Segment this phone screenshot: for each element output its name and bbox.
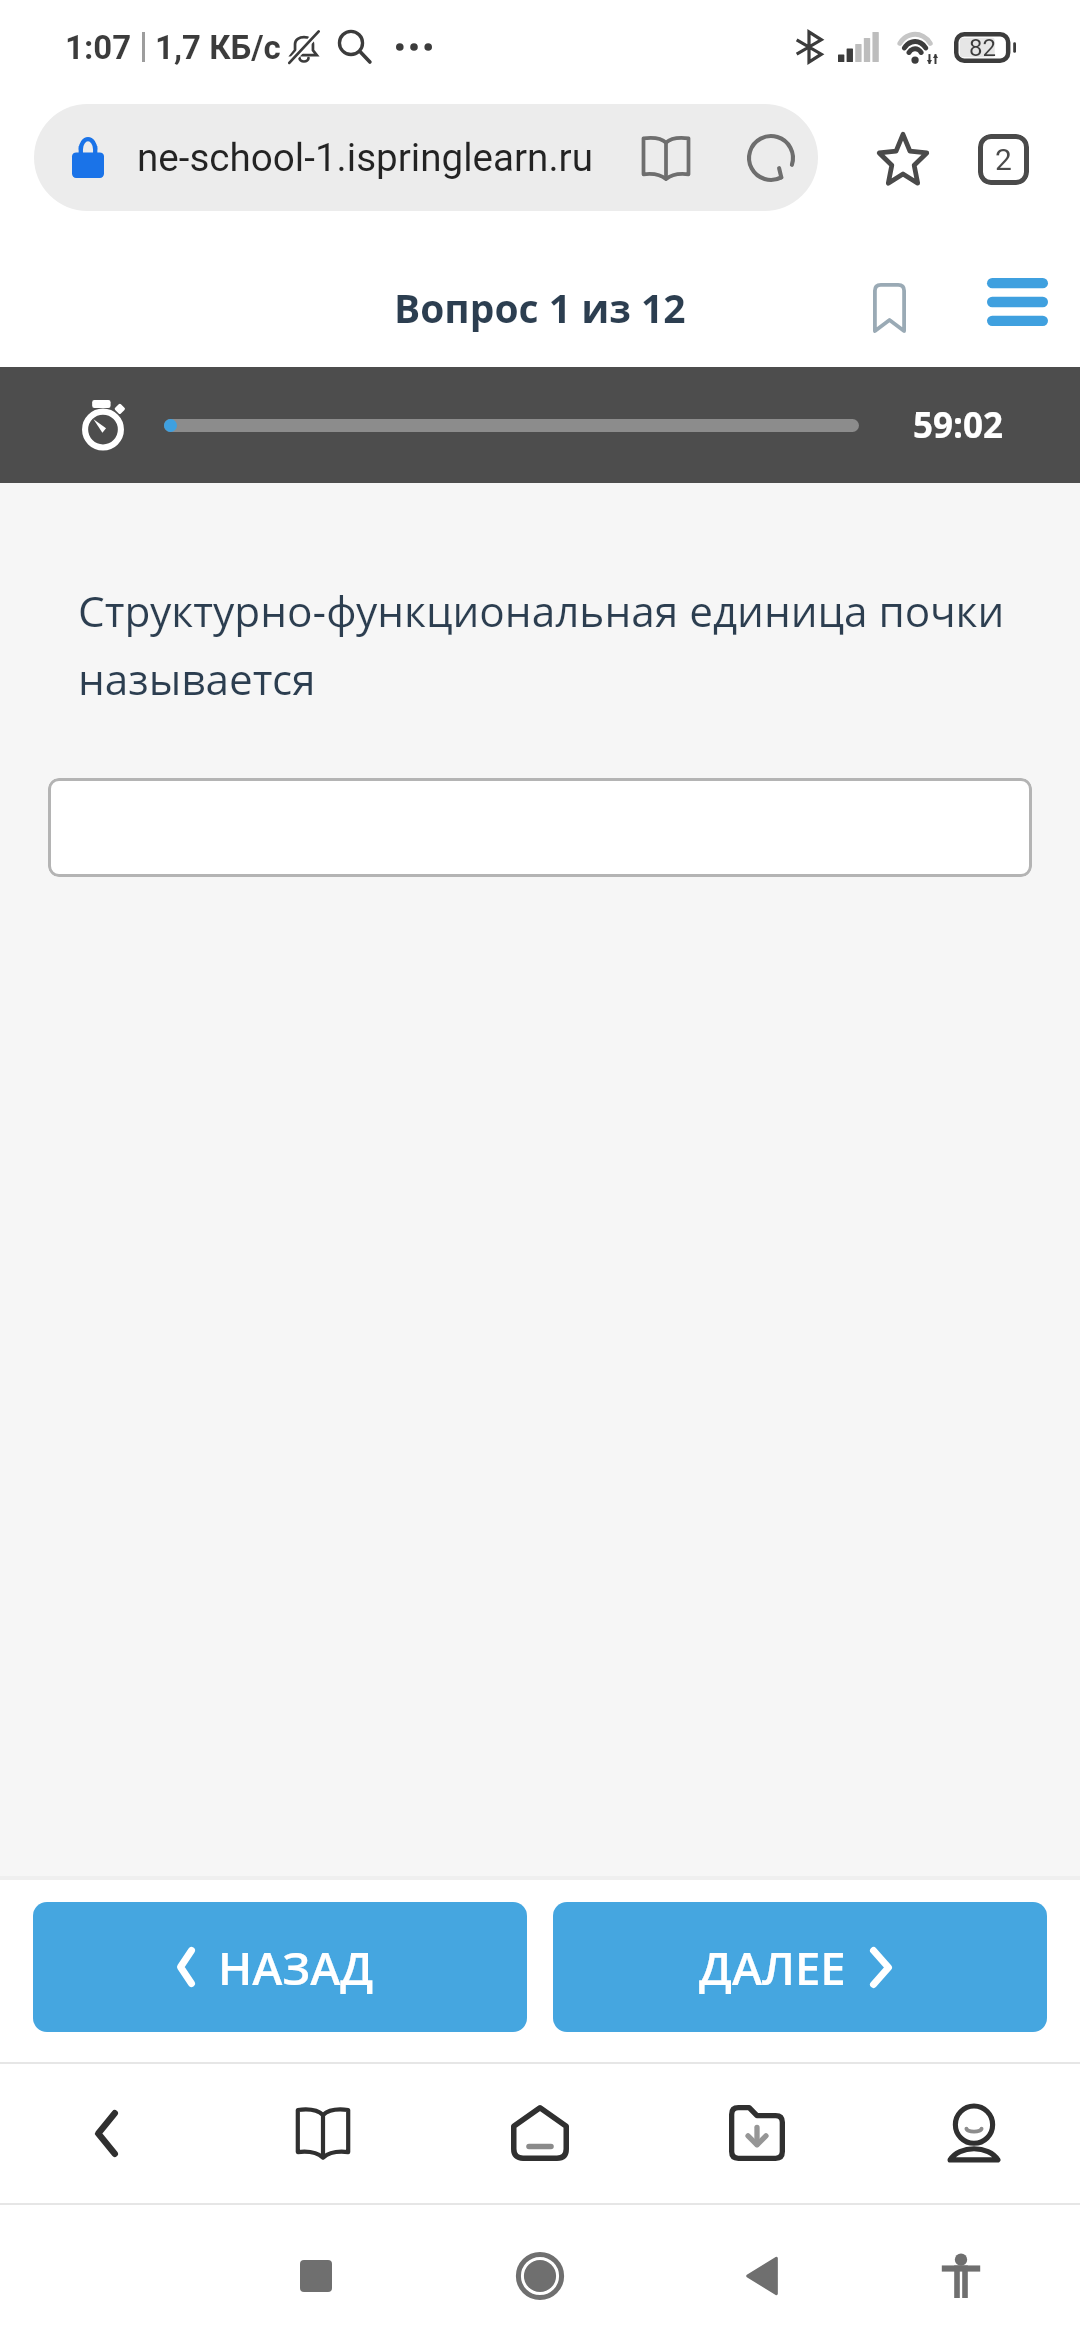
button[interactable]: Menu xyxy=(965,249,1070,354)
staticText: 1,7 КБ/с xyxy=(155,28,281,67)
button[interactable]: ne-school-1.ispringlearn.ru xyxy=(34,104,818,211)
staticText: Структурно-функциональная единица почки … xyxy=(78,582,1040,708)
button[interactable]: Bookmark xyxy=(853,107,953,207)
button[interactable]: Tabs xyxy=(953,109,1053,209)
button[interactable]: Back xyxy=(707,2221,817,2331)
button[interactable]: Home xyxy=(470,2063,610,2203)
staticText: 1:07 xyxy=(65,28,132,67)
staticText: Вопрос 1 из 12 xyxy=(394,281,686,334)
staticText: 59:02 xyxy=(913,401,1003,449)
staticText: 82 xyxy=(969,34,996,62)
button[interactable]: Recents xyxy=(261,2221,371,2331)
button[interactable]: Profile xyxy=(904,2063,1044,2203)
staticText: НАЗАД xyxy=(218,1936,374,1998)
button[interactable]: Back xyxy=(36,2063,176,2203)
button[interactable]: Home xyxy=(485,2221,595,2331)
button[interactable]: Bookmark question xyxy=(837,255,942,360)
button[interactable]: Downloads xyxy=(687,2063,827,2203)
staticText: ne-school-1.ispringlearn.ru xyxy=(137,135,593,180)
staticText: ДАЛЕЕ xyxy=(699,1936,846,1998)
button[interactable]: Accessibility xyxy=(906,2221,1016,2331)
button[interactable] xyxy=(48,778,1032,877)
button[interactable]: Bookmarks xyxy=(253,2063,393,2203)
staticText: 2 xyxy=(995,142,1012,177)
button[interactable]: НАЗАД xyxy=(33,1902,527,2032)
button[interactable]: ДАЛЕЕ xyxy=(553,1902,1047,2032)
